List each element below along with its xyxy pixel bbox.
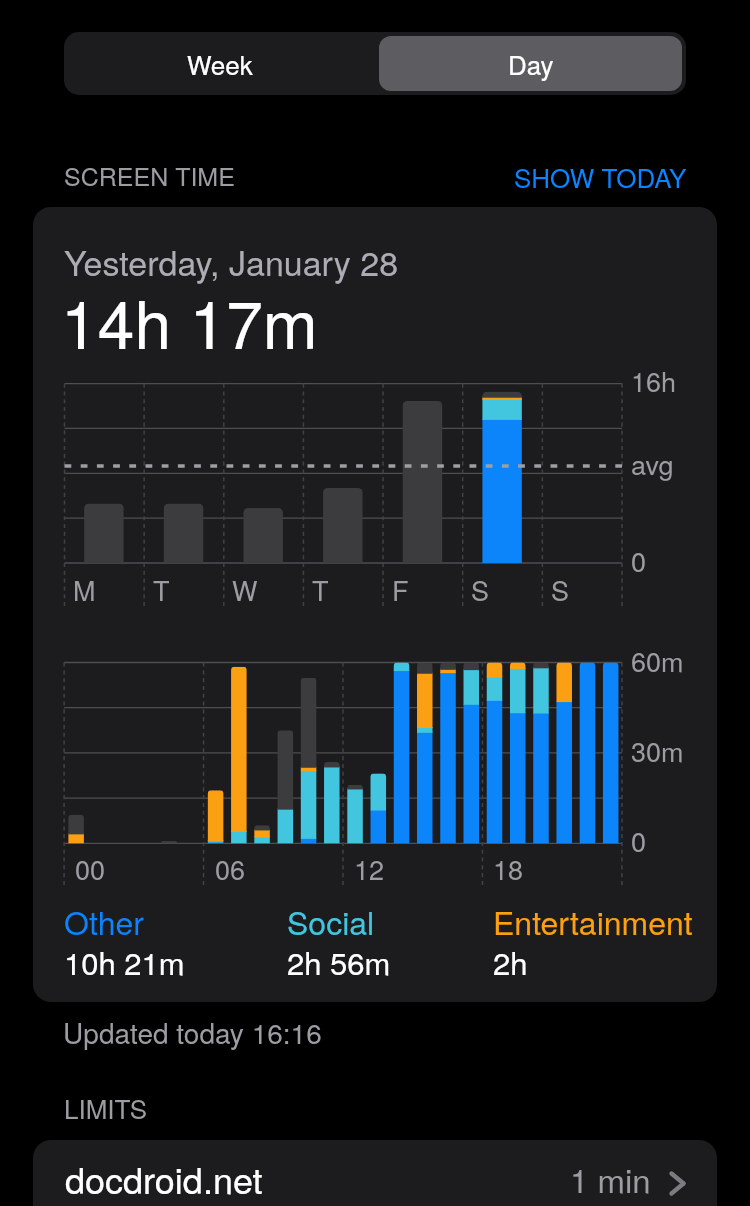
staticText: T xyxy=(153,570,170,609)
staticText: 00 xyxy=(75,849,106,888)
staticText: Yesterday, January 28 xyxy=(64,237,399,286)
staticText: SHOW TODAY xyxy=(514,158,687,195)
button[interactable]: Entertainment xyxy=(493,898,693,944)
staticText: 16h xyxy=(631,361,677,400)
button[interactable]: Social xyxy=(287,898,391,944)
staticText: 0 xyxy=(631,541,647,580)
staticText: F xyxy=(392,570,409,609)
staticText: avg xyxy=(631,444,674,483)
staticText: 2h xyxy=(493,939,528,983)
staticText: S xyxy=(471,570,490,609)
staticText: Updated today 16:16 xyxy=(63,1012,322,1052)
staticText: S xyxy=(551,570,570,609)
staticText: T xyxy=(312,570,329,609)
staticText: M xyxy=(73,570,96,609)
button[interactable]: docdroid.net xyxy=(33,1140,717,1206)
staticText: 30m xyxy=(631,731,684,770)
staticText: 14h 17m xyxy=(61,273,318,368)
staticText: 0 xyxy=(631,821,647,860)
button[interactable]: SHOW TODAY xyxy=(500,145,700,193)
staticText: Entertainment xyxy=(493,898,693,944)
button[interactable]: Day xyxy=(379,36,682,91)
staticText: SCREEN TIME xyxy=(64,157,235,193)
staticText: 06 xyxy=(215,849,246,888)
staticText: W xyxy=(232,570,258,609)
staticText: Social xyxy=(287,898,375,944)
staticText: Day xyxy=(508,45,554,82)
staticText: docdroid.net xyxy=(65,1153,263,1205)
staticText: Week xyxy=(187,45,253,82)
staticText: 18 xyxy=(493,849,524,888)
button[interactable]: Week xyxy=(64,32,375,95)
staticText: 1 min xyxy=(570,1155,651,1202)
staticText: 12 xyxy=(354,849,385,888)
button[interactable]: Open docdroid.net limit xyxy=(657,1165,697,1201)
staticText: LIMITS xyxy=(64,1089,148,1126)
staticText: Other xyxy=(64,898,144,944)
button[interactable]: Other xyxy=(64,898,185,944)
staticText: 2h 56m xyxy=(287,939,391,983)
staticText: 60m xyxy=(631,641,684,680)
staticText: 10h 21m xyxy=(64,939,185,983)
button[interactable]: Yesterday, January 28 xyxy=(33,207,717,1002)
